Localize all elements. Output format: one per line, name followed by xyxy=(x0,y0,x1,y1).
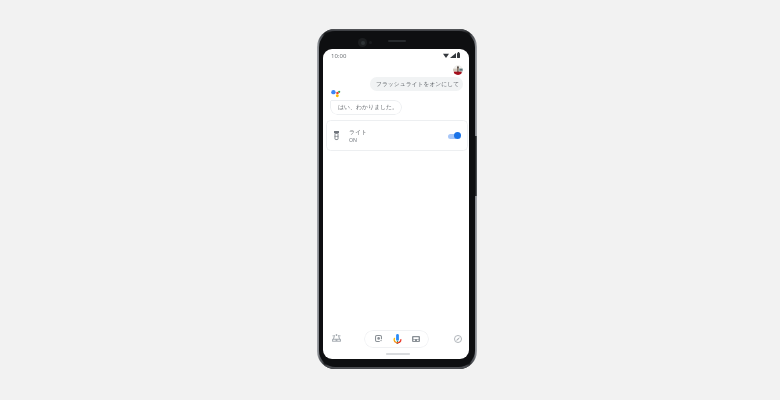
staticText: はい、わかりました。 xyxy=(338,103,399,110)
button[interactable]: Keyboard xyxy=(408,332,423,346)
button[interactable]: はい、わかりました。 xyxy=(330,100,402,115)
button[interactable]: Explore xyxy=(447,328,468,349)
staticText: ON xyxy=(349,136,357,143)
button[interactable]: ライト xyxy=(326,120,468,151)
button[interactable]: フラッシュライトをオンにして xyxy=(370,77,463,91)
staticText: ライト xyxy=(349,128,368,135)
staticText: 10:00 xyxy=(331,52,347,60)
button[interactable]: Voice search xyxy=(390,330,405,347)
button[interactable]: Snapshot xyxy=(325,327,347,348)
staticText: フラッシュライトをオンにして xyxy=(376,80,460,87)
button[interactable]: Account xyxy=(453,65,463,75)
button[interactable]: Google Lens xyxy=(371,331,386,346)
